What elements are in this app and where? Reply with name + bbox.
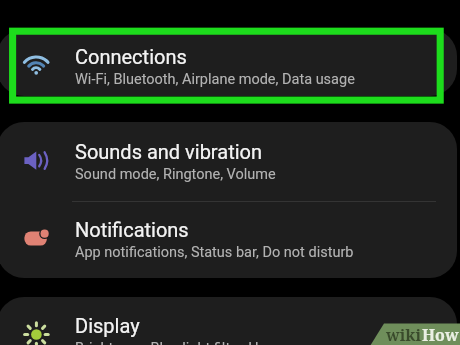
staticText: Connections: [75, 45, 187, 68]
staticText: How: [422, 324, 459, 345]
staticText: Notifications: [75, 218, 189, 241]
button[interactable]: Sounds and vibration: [0, 122, 457, 201]
staticText: Brightness, Blue light filter, Home scre…: [75, 340, 335, 345]
staticText: Sound mode, Ringtone, Volume: [75, 166, 276, 183]
button[interactable]: Notifications: [0, 201, 457, 278]
button[interactable]: Connections: [0, 29, 457, 96]
other: Connections: [22, 54, 51, 76]
other: Sounds and vibration: [24, 151, 50, 171]
staticText: Sounds and vibration: [75, 140, 262, 163]
staticText: wiki: [386, 324, 422, 345]
staticText: Display: [75, 314, 140, 337]
button[interactable]: Display: [0, 297, 457, 345]
other: Notifications: [24, 231, 49, 247]
staticText: Wi-Fi, Bluetooth, Airplane mode, Data us…: [75, 71, 355, 88]
staticText: App notifications, Status bar, Do not di…: [75, 244, 354, 261]
other: Display: [23, 321, 49, 345]
